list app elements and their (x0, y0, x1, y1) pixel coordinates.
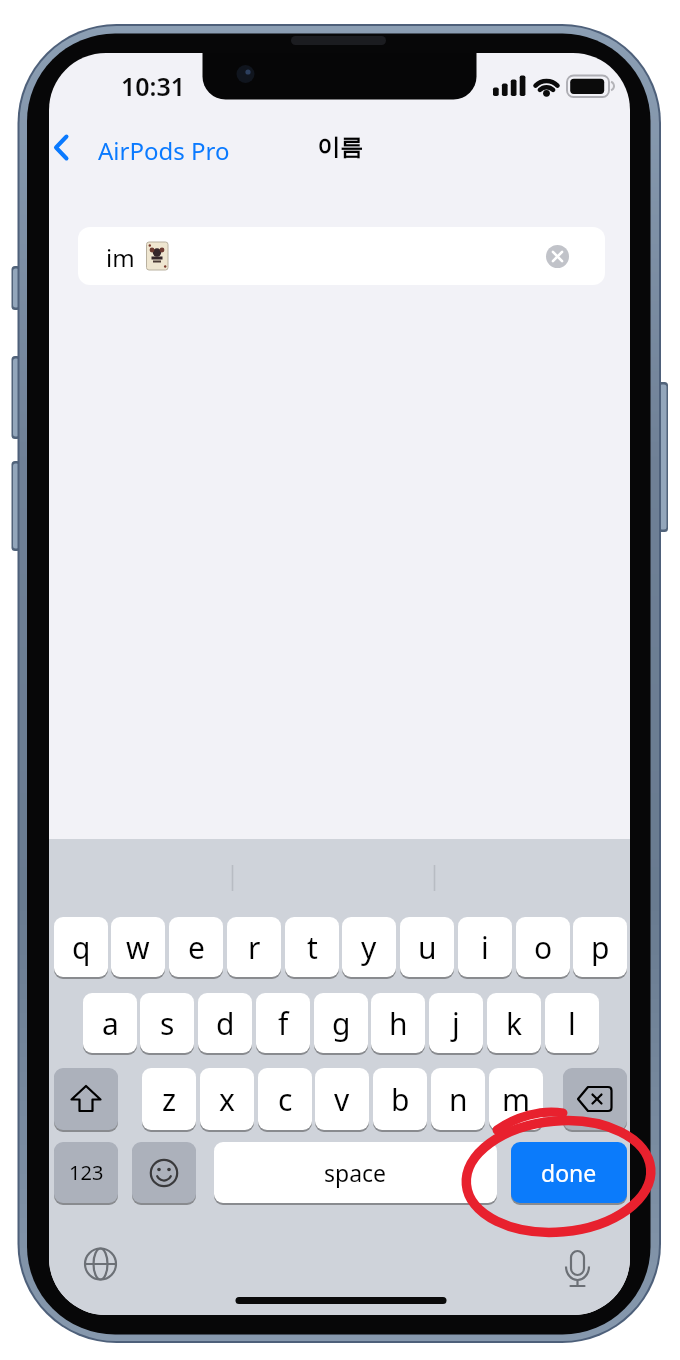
staticText: z (162, 1079, 177, 1120)
staticText: 이름 (317, 133, 363, 162)
button[interactable] (555, 1241, 601, 1287)
staticText: im (106, 241, 135, 274)
button[interactable] (76, 132, 246, 164)
button[interactable]: f (256, 993, 310, 1053)
staticText: h (389, 1003, 408, 1044)
staticText: 10:31 (121, 69, 186, 103)
staticText: a (102, 1003, 119, 1044)
button[interactable]: g (314, 993, 368, 1053)
button[interactable]: x (200, 1068, 254, 1130)
staticText: done (541, 1157, 597, 1188)
button[interactable] (54, 1068, 118, 1130)
button[interactable]: z (142, 1068, 196, 1130)
button[interactable]: o (516, 917, 570, 977)
staticText: w (126, 927, 150, 968)
staticText: AirPods Pro (98, 134, 230, 167)
button[interactable]: d (198, 993, 252, 1053)
button[interactable]: b (373, 1068, 427, 1130)
staticText: j (452, 1003, 460, 1044)
button[interactable]: h (371, 993, 425, 1053)
button[interactable]: k (487, 993, 541, 1053)
staticText: o (534, 927, 553, 968)
button[interactable]: n (431, 1068, 485, 1130)
button[interactable]: u (400, 917, 454, 977)
staticText: i (481, 927, 489, 968)
button[interactable]: m (489, 1068, 543, 1130)
button[interactable] (539, 238, 576, 275)
button[interactable] (78, 227, 605, 285)
button[interactable]: w (111, 917, 165, 977)
button[interactable]: q (54, 917, 108, 977)
staticText: g (332, 1003, 351, 1044)
staticText: q (72, 927, 91, 968)
button[interactable]: 123 (54, 1142, 118, 1203)
staticText: p (591, 927, 610, 968)
staticText: m (502, 1079, 531, 1120)
button[interactable]: space (214, 1142, 497, 1203)
button[interactable]: j (429, 993, 483, 1053)
button[interactable] (563, 1068, 627, 1130)
button[interactable]: done (511, 1142, 627, 1203)
staticText: s (160, 1003, 175, 1044)
staticText: r (248, 927, 261, 968)
button[interactable]: r (227, 917, 281, 977)
staticText: f (278, 1003, 289, 1044)
staticText: space (324, 1157, 387, 1188)
button[interactable]: i (458, 917, 512, 977)
staticText: v (334, 1079, 350, 1120)
button[interactable]: s (140, 993, 194, 1053)
staticText: e (188, 927, 205, 968)
staticText: n (449, 1079, 468, 1120)
staticText: x (219, 1079, 235, 1120)
button[interactable]: e (169, 917, 223, 977)
button[interactable]: a (83, 993, 137, 1053)
staticText: t (307, 927, 318, 968)
staticText: k (506, 1003, 523, 1044)
button[interactable]: t (285, 917, 339, 977)
button[interactable] (132, 1142, 196, 1203)
button[interactable]: l (545, 993, 599, 1053)
button[interactable] (78, 1241, 124, 1287)
button[interactable]: p (573, 917, 627, 977)
staticText: c (278, 1079, 293, 1120)
button[interactable]: v (315, 1068, 369, 1130)
staticText: 123 (69, 1159, 104, 1186)
button[interactable]: c (258, 1068, 312, 1130)
staticText: d (216, 1003, 235, 1044)
staticText: l (568, 1003, 576, 1044)
staticText: y (361, 927, 377, 968)
staticText: u (418, 927, 437, 968)
staticText: b (391, 1079, 410, 1120)
button[interactable]: y (342, 917, 396, 977)
